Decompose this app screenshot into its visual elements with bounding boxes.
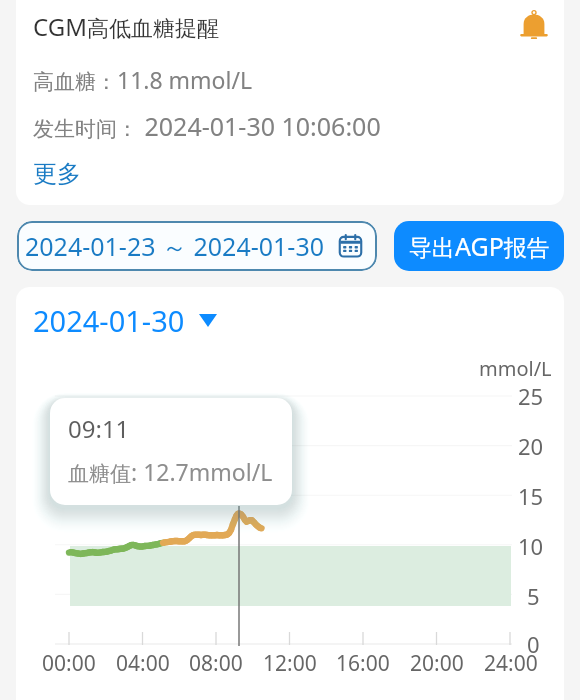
staticText: 24:00 [484, 649, 538, 678]
staticText: 5 [527, 581, 540, 611]
staticText: 15 [518, 481, 544, 511]
staticText: 0 [527, 629, 540, 659]
button[interactable]: 更多 [33, 159, 81, 189]
staticText: 10 [518, 531, 544, 561]
staticText: 2024-01-23 ～ 2024-01-30 [25, 229, 325, 263]
staticText: 25 [518, 381, 544, 411]
staticText: 09:11 [68, 412, 130, 445]
button[interactable]: 导出AGP报告 [394, 221, 564, 271]
staticText: 高血糖：11.8 mmol/L [33, 64, 253, 95]
button[interactable]: 2024-01-23 ～ 2024-01-30 [17, 221, 377, 271]
staticText: 04:00 [116, 649, 170, 678]
staticText: 12:00 [263, 649, 317, 678]
staticText: 导出AGP报告 [409, 229, 550, 263]
staticText: CGM高低血糖提醒 [33, 10, 219, 43]
staticText: 更多 [33, 159, 81, 189]
staticText: 2024-01-30 [33, 301, 185, 340]
button[interactable]: Notifications [519, 8, 549, 41]
staticText: 00:00 [42, 649, 96, 678]
staticText: 20:00 [410, 649, 464, 678]
staticText: 08:00 [189, 649, 243, 678]
staticText: 血糖值: 12.7mmol/L [68, 456, 273, 487]
staticText: 发生时间： 2024-01-30 10:06:00 [33, 109, 381, 143]
button[interactable]: 2024-01-30 [33, 301, 217, 340]
staticText: 16:00 [336, 649, 390, 678]
staticText: 20 [518, 431, 544, 461]
staticText: mmol/L [479, 355, 552, 382]
